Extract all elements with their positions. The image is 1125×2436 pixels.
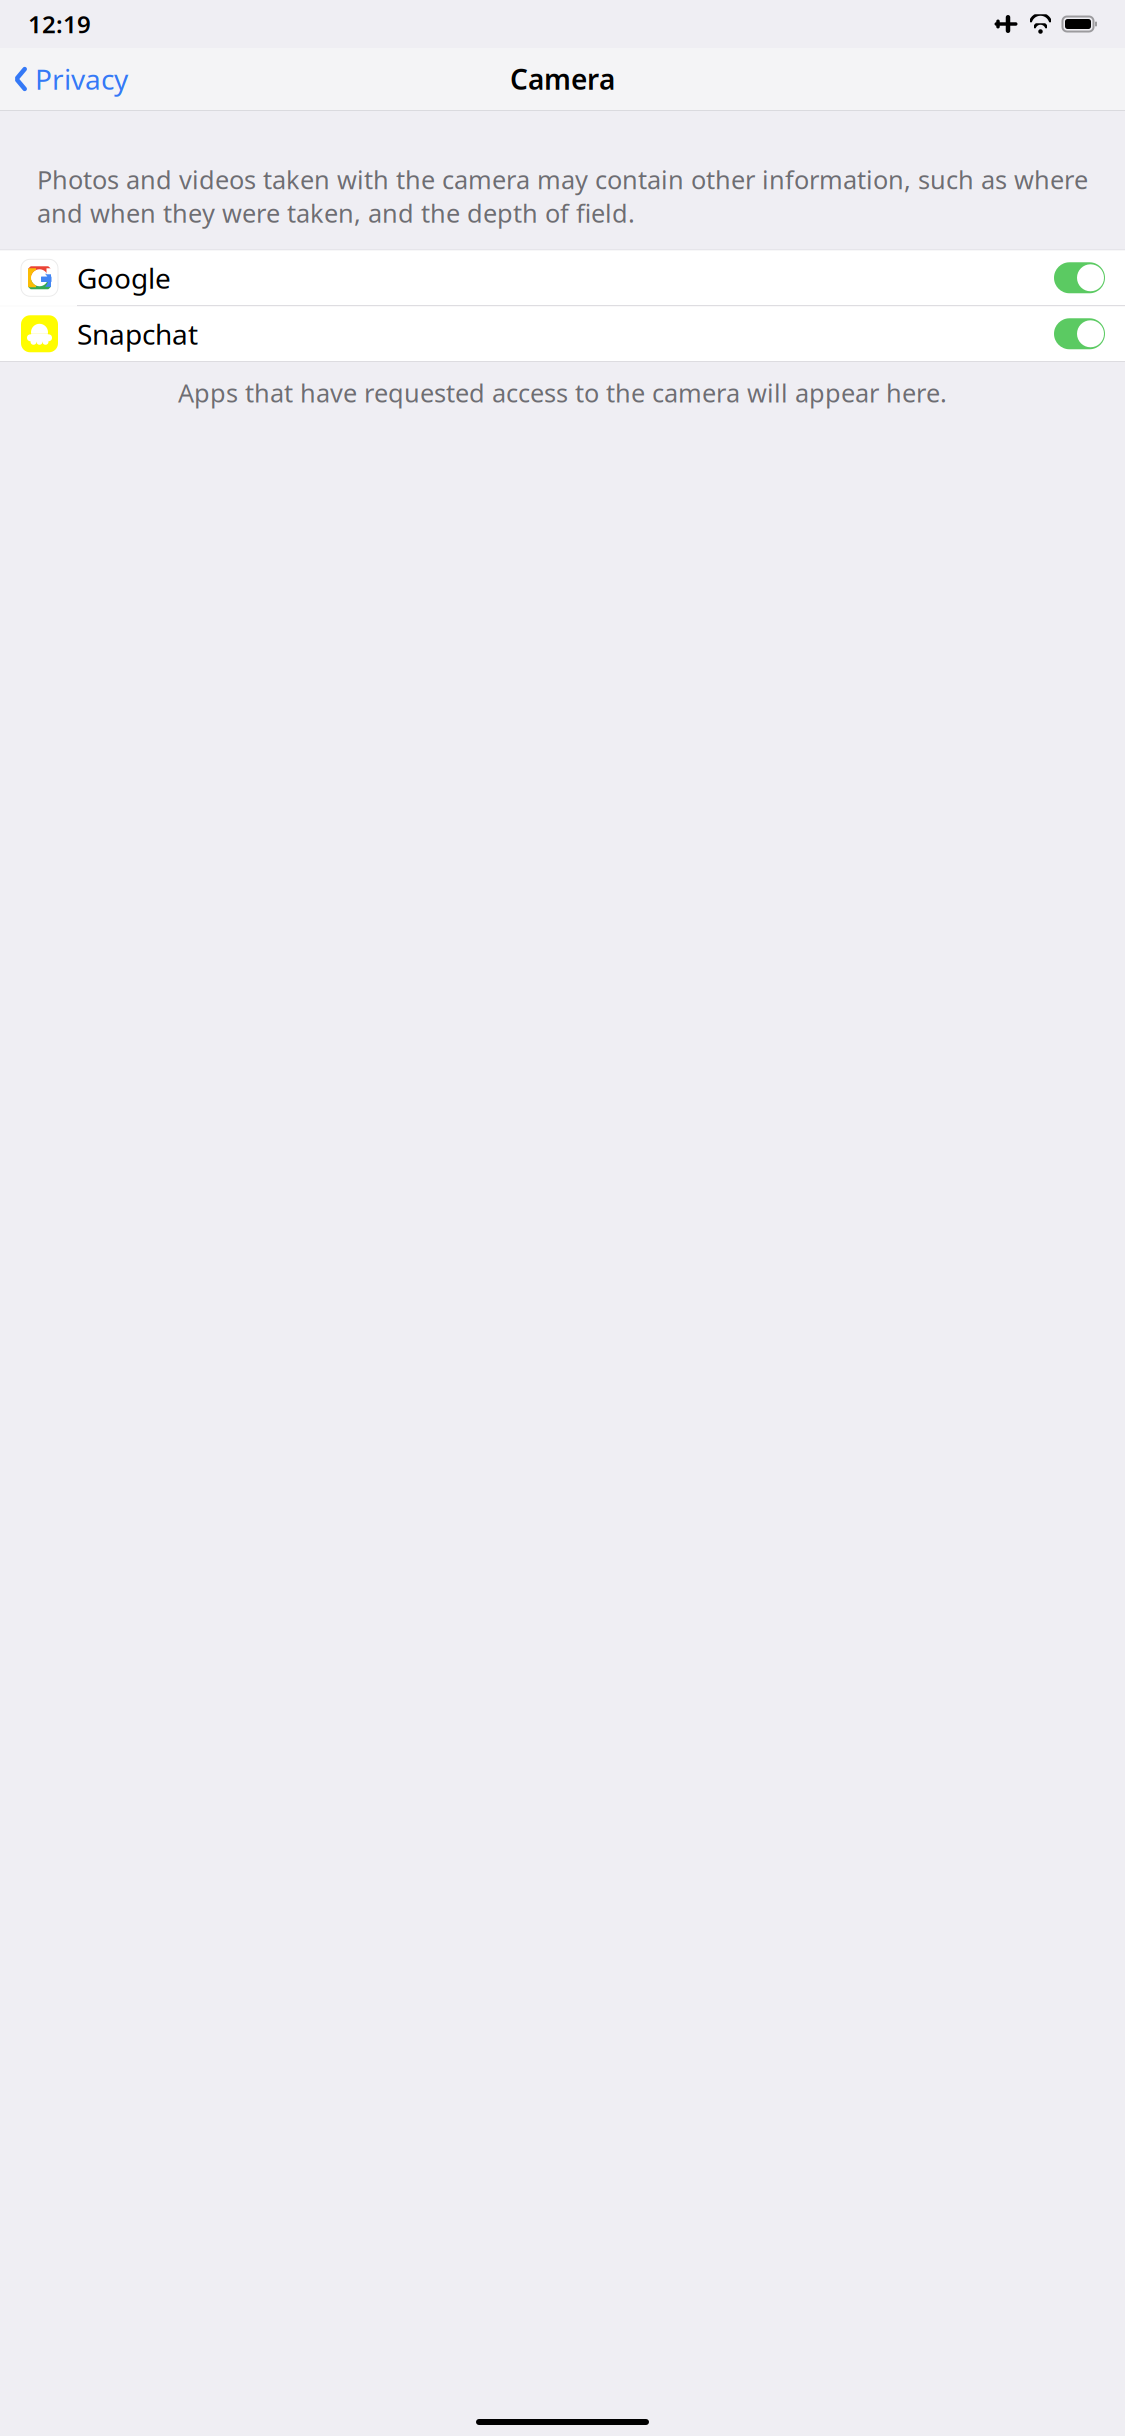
- staticText: Google: [77, 259, 171, 296]
- staticText: Photos and videos taken with the camera …: [37, 162, 1088, 230]
- staticText: Camera: [510, 60, 615, 98]
- button[interactable]: Snapchat: [0, 306, 1125, 361]
- staticText: Apps that have requested access to the c…: [178, 376, 947, 409]
- staticText: Privacy: [35, 60, 128, 98]
- button[interactable]: Google: [0, 250, 1125, 305]
- staticText: 12:19: [28, 8, 91, 40]
- staticText: Snapchat: [77, 315, 198, 352]
- button[interactable]: Privacy: [0, 51, 138, 107]
